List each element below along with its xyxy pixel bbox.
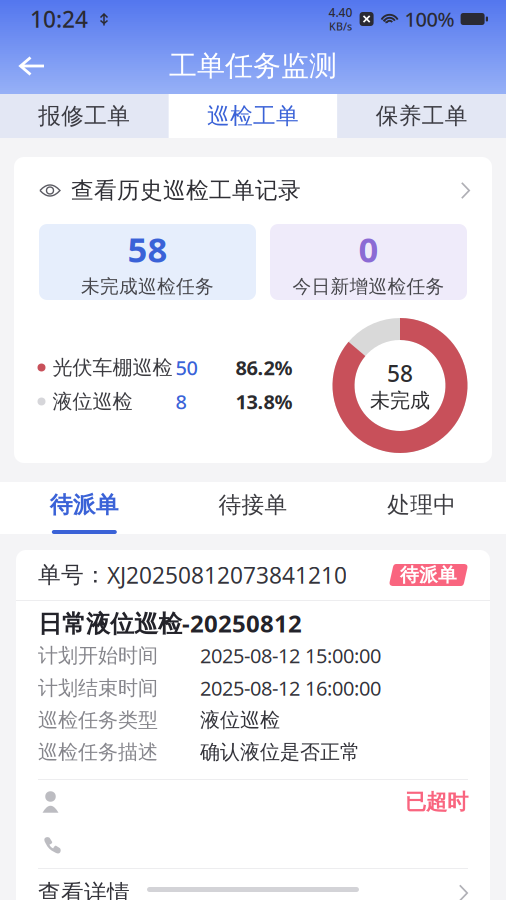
button[interactable]: 0 [270,224,467,300]
button[interactable]: 58 [39,224,256,300]
staticText: 50 [175,354,197,381]
staticText: 2025-08-12 15:00:00 [200,642,381,669]
staticText: KB/s [329,19,352,34]
staticText: 保养工单 [376,102,468,130]
staticText: 10:24 [30,4,88,34]
staticText: 今日新增巡检任务 [292,275,444,298]
staticText: 确认液位是否正常 [200,740,360,764]
staticText: 日常液位巡检-20250812 [38,607,302,639]
button[interactable]: 报修工单 [0,94,169,138]
staticText: 未完成 [370,388,430,413]
staticText: 工单任务监测 [169,49,337,83]
staticText: 巡检任务类型 [38,708,158,732]
staticText: 单号： [38,561,107,589]
staticText: 0 [358,226,378,272]
staticText: 未完成巡检任务 [81,275,214,298]
staticText: 计划开始时间 [38,643,158,668]
staticText: 查看详情 [38,879,130,900]
staticText: 待接单 [218,491,287,519]
staticText: 处理中 [387,491,456,519]
staticText: 100% [405,6,455,32]
staticText: 计划结束时间 [38,676,158,700]
staticText: 光伏车棚巡检 [52,355,172,380]
button[interactable]: 待派单 [0,482,169,534]
staticText: 2025-08-12 16:00:00 [200,675,381,701]
staticText: 58 [127,226,167,272]
button[interactable]: 查看历史巡检工单记录 [14,157,492,224]
button[interactable]: 查看详情 [16,869,490,900]
button[interactable]: 保养工单 [337,94,506,138]
button[interactable]: 巡检工单 [169,94,337,138]
staticText: XJ20250812073841210 [107,560,347,590]
staticText: 86.2% [235,354,292,381]
button[interactable]: 待接单 [169,482,337,534]
staticText: 待派单 [400,563,457,586]
staticText: 8 [175,388,186,415]
staticText: 13.8% [235,388,292,415]
staticText: 58 [387,358,413,388]
staticText: 液位巡检 [200,708,280,732]
staticText: 报修工单 [38,102,130,130]
button[interactable]: Back [0,47,64,85]
staticText: 液位巡检 [52,389,132,414]
staticText: 查看历史巡检工单记录 [71,177,301,204]
staticText: 待派单 [50,491,119,519]
button[interactable]: 处理中 [337,482,506,534]
staticText: 巡检任务描述 [38,740,158,764]
staticText: 4.40 [329,4,353,20]
staticText: 已超时 [405,789,468,815]
staticText: 巡检工单 [207,102,299,130]
